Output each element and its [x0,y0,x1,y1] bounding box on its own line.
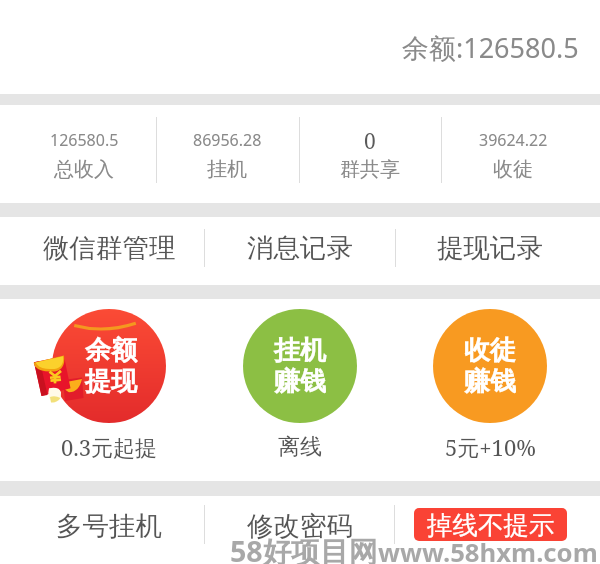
staticText: 58好项目网 [230,531,378,564]
staticText: 微信群管理 [43,231,176,264]
staticText: 修改密码 [247,509,353,542]
button[interactable]: 0 [299,105,441,203]
staticText: 86956.28 [193,129,262,151]
button[interactable]: 消息记录 [205,223,395,271]
staticText: 总收入 [54,157,114,182]
staticText: 离线 [278,433,322,461]
staticText: 挂机 赚钱 [274,334,326,398]
staticText: 收徒 赚钱 [464,334,516,398]
staticText: www.58hxm.com [378,535,598,564]
other: 红包 [32,353,82,402]
button[interactable]: 126580.5 [13,105,155,203]
staticText: 余额 提现 [85,334,137,398]
staticText: 0 [364,127,376,151]
staticText: 126580.5 [50,129,119,151]
button[interactable]: 余额 提现 [52,309,166,423]
button[interactable]: 余额:126580.5 [0,0,600,94]
staticText: 0.3元起提 [61,432,158,462]
button[interactable]: 86956.28 [156,105,298,203]
button[interactable]: 多号挂机 [14,501,204,549]
staticText: 提现记录 [437,231,543,264]
staticText: 39624.22 [479,129,548,151]
button[interactable]: 微信群管理 [14,223,204,271]
staticText: 5元+10% [445,432,536,462]
staticText: 群共享 [340,157,400,182]
staticText: 消息记录 [247,231,353,264]
button[interactable]: 收徒 赚钱 [433,309,547,423]
button[interactable]: 挂机 赚钱 [243,309,357,423]
button[interactable]: 39624.22 [442,105,584,203]
staticText: 多号挂机 [56,509,162,542]
button[interactable]: 掉线不提示 [414,508,567,541]
button[interactable]: 修改密码 [205,501,395,549]
staticText: 掉线不提示 [427,509,555,541]
staticText: 余额:126580.5 [402,29,579,66]
staticText: 收徒 [493,157,533,182]
staticText: 挂机 [207,157,247,182]
button[interactable]: 提现记录 [395,223,585,271]
